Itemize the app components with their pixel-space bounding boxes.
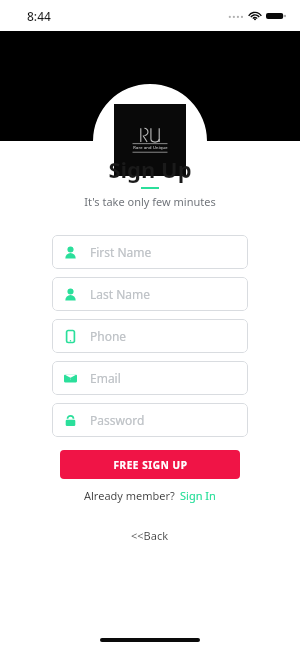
other: Name [64, 288, 77, 301]
button[interactable]: Sign In [180, 488, 216, 503]
button[interactable]: <<Back [123, 526, 177, 545]
other: Email [64, 372, 77, 385]
staticText: Rare and Unique [133, 145, 168, 150]
staticText: Last Name [90, 286, 151, 302]
other: Phone [64, 330, 77, 343]
staticText: FREE SIGN UP [113, 458, 188, 472]
button[interactable]: FREE SIGN UP [60, 450, 240, 479]
staticText: Already member? [84, 488, 175, 503]
other: Password [64, 414, 77, 427]
button[interactable]: Name [52, 277, 248, 311]
staticText: <<Back [131, 528, 169, 543]
button[interactable]: Phone [52, 319, 248, 353]
other: Name [64, 246, 77, 259]
staticText: Email [90, 370, 121, 386]
staticText: First Name [90, 244, 152, 260]
staticText: Sign In [180, 488, 216, 503]
button[interactable]: Email [52, 361, 248, 395]
button[interactable]: Password [52, 403, 248, 437]
staticText: Sign Up [0, 154, 300, 184]
staticText: Password [90, 412, 145, 428]
staticText: Phone [90, 328, 127, 344]
staticText: 8:44 [27, 8, 51, 24]
button[interactable]: Name [52, 235, 248, 269]
staticText: It's take only few minutes [0, 194, 300, 209]
